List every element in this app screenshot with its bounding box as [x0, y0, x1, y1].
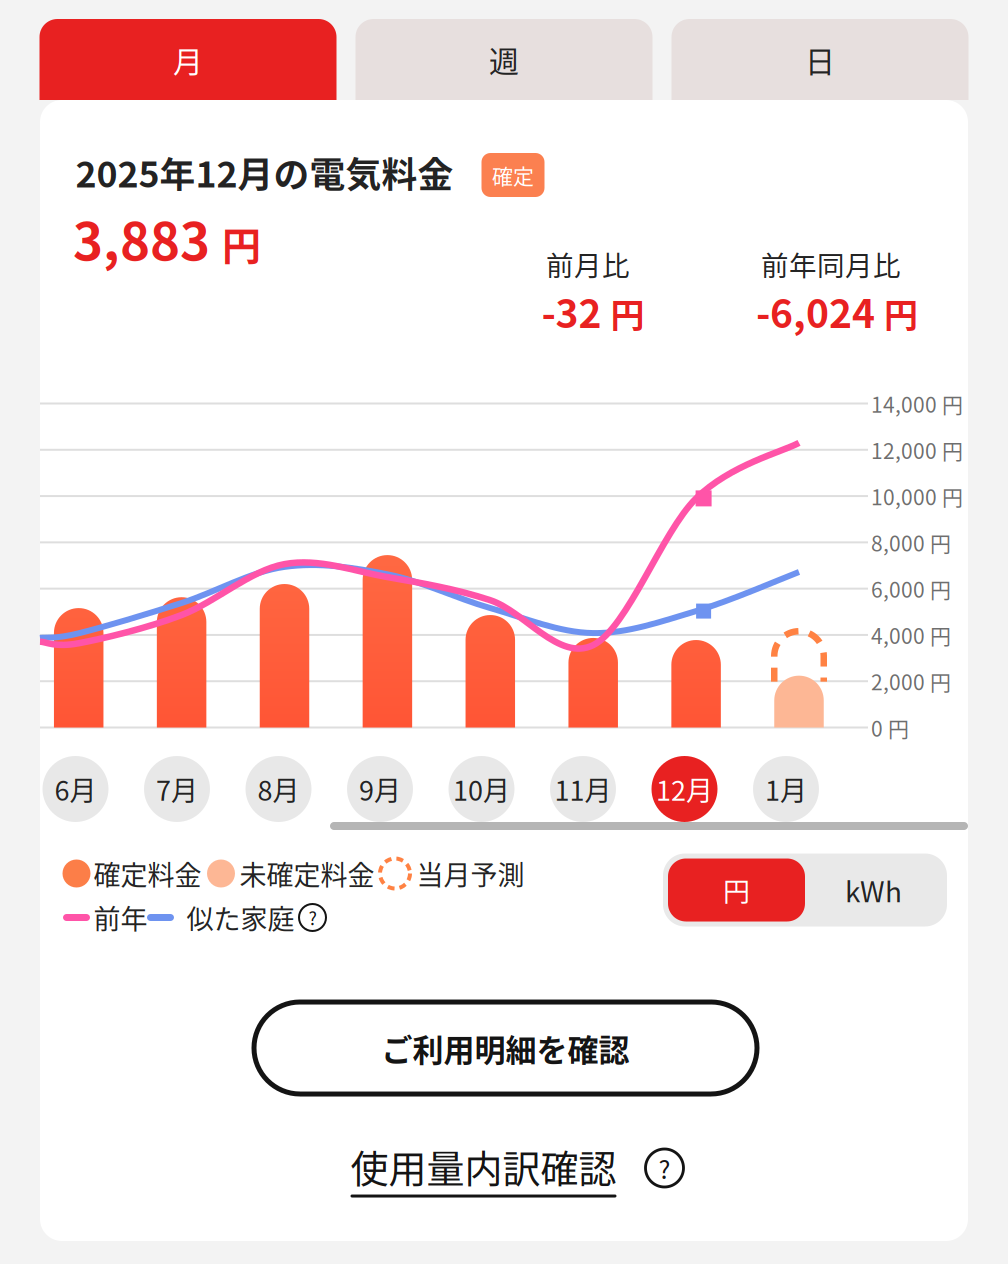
staticText: 8,000 円	[871, 527, 951, 558]
button[interactable]: 月	[39, 19, 336, 100]
staticText: 3,883	[73, 201, 210, 275]
button[interactable]: 10月	[448, 756, 514, 822]
staticText: 6,000 円	[871, 573, 951, 604]
staticText: 円	[610, 289, 644, 338]
staticText: 12,000 円	[871, 435, 963, 465]
button[interactable]: kWh	[805, 858, 942, 921]
staticText: 0 円	[871, 712, 909, 743]
staticText: -32	[541, 283, 601, 339]
staticText: 似た家庭	[186, 898, 294, 937]
staticText: ?	[658, 1150, 670, 1186]
staticText: 4,000 円	[871, 620, 951, 650]
button[interactable]: 12月	[651, 756, 717, 822]
staticText: 1月	[765, 769, 807, 809]
button[interactable]: 9月	[347, 756, 413, 822]
staticText: 未確定料金	[239, 854, 374, 893]
staticText: 週	[489, 38, 519, 81]
staticText: ?	[308, 905, 316, 930]
staticText: 前年同月比	[761, 244, 901, 284]
button[interactable]: 使用量内訳確認	[350, 1138, 616, 1197]
staticText: 前年	[93, 898, 147, 937]
staticText: 月	[173, 38, 203, 81]
staticText: kWh	[845, 870, 902, 910]
staticText: 確定	[492, 160, 534, 190]
staticText: 6月	[54, 769, 96, 809]
staticText: 10月	[453, 769, 510, 809]
staticText: 円	[884, 289, 918, 338]
staticText: 円	[222, 215, 261, 271]
staticText: 使用量内訳確認	[350, 1138, 616, 1193]
staticText: 当月予測	[416, 854, 524, 893]
button[interactable]: 1月	[753, 756, 819, 822]
staticText: 12月	[656, 769, 713, 809]
button[interactable]: 6月	[42, 756, 108, 822]
staticText: 7月	[156, 769, 198, 809]
staticText: 前月比	[546, 244, 630, 284]
button[interactable]: 8月	[245, 756, 311, 822]
staticText: 日	[805, 38, 835, 81]
button[interactable]: 日	[671, 19, 968, 100]
button[interactable]: ヘルプ	[645, 1149, 683, 1187]
staticText: 9月	[359, 769, 401, 809]
staticText: 円	[723, 870, 750, 910]
button[interactable]: 11月	[550, 756, 616, 822]
staticText: 11月	[554, 769, 611, 809]
staticText: 確定料金	[93, 854, 201, 893]
staticText: 10,000 円	[871, 481, 963, 511]
button[interactable]: 週	[355, 19, 652, 100]
button[interactable]: ご利用明細を確認	[254, 1002, 757, 1094]
staticText: 8月	[257, 769, 299, 809]
staticText: 14,000 円	[871, 388, 963, 419]
staticText: 2025年12月の電気料金	[75, 146, 453, 198]
staticText: -6,024	[756, 283, 875, 339]
button[interactable]: 円	[668, 858, 805, 921]
staticText: 2,000 円	[871, 666, 951, 696]
button[interactable]: 7月	[144, 756, 210, 822]
staticText: ご利用明細を確認	[381, 1026, 629, 1070]
